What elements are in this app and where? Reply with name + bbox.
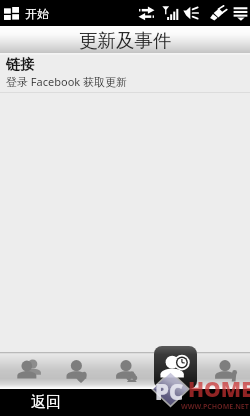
staticText: 开始 [25,6,49,21]
button[interactable]: 链接 [0,55,250,92]
staticText: WWW.PCHOME.NET [181,402,249,412]
button[interactable]: 返回 [23,389,69,416]
staticText: 返回 [31,393,61,412]
button[interactable]: All contacts [4,352,52,389]
button[interactable]: Favourites [54,352,102,389]
button[interactable]: Me [203,352,250,389]
staticText: HOME [188,375,250,404]
button[interactable]: Recent [154,346,197,389]
staticText: 链接 [6,56,34,74]
staticText: 更新及事件 [79,29,172,52]
button[interactable]: Menu [233,5,248,21]
staticText: 登录 Facebook 获取更新 [6,74,128,89]
button[interactable]: Groups [104,352,152,389]
button[interactable]: 开始 [0,0,55,26]
staticText: PC [155,376,184,406]
